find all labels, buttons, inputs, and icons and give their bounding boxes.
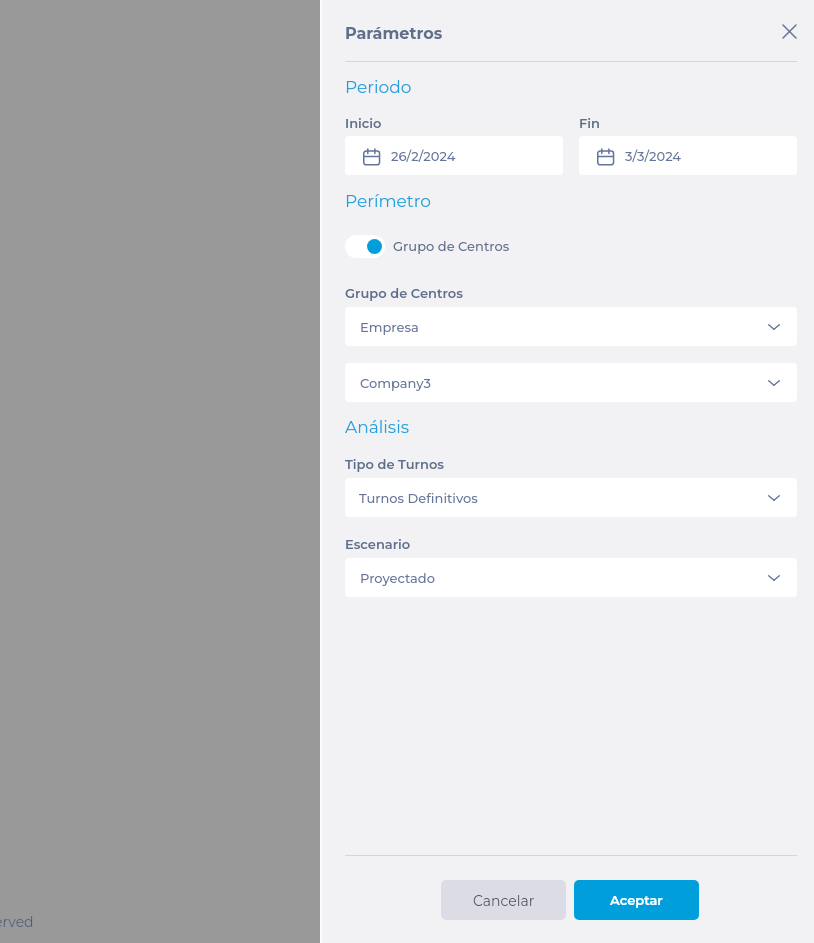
staticText: Aceptar — [610, 892, 663, 908]
staticText: Fin — [579, 115, 600, 131]
staticText: Periodo — [345, 77, 412, 98]
button[interactable]: Cancelar — [441, 880, 566, 920]
staticText: Company3 — [360, 375, 431, 391]
staticText: Proyectado — [360, 570, 435, 586]
staticText: erved — [0, 913, 34, 930]
button[interactable]: Turnos Definitivos — [345, 478, 797, 517]
staticText: Empresa — [360, 319, 419, 335]
button[interactable]: Cerrar — [775, 17, 803, 45]
button[interactable]: Proyectado — [345, 558, 797, 597]
button[interactable]: Aceptar — [574, 880, 699, 920]
button[interactable]: Grupo de Centros — [345, 235, 502, 258]
button[interactable]: Company3 — [345, 363, 797, 402]
staticText: Tipo de Turnos — [345, 456, 444, 472]
button[interactable]: 26/2/2024 — [345, 136, 563, 175]
button[interactable]: Empresa — [345, 307, 797, 346]
staticText: 26/2/2024 — [391, 148, 456, 164]
staticText: Grupo de Centros — [393, 238, 510, 254]
staticText: Análisis — [345, 417, 410, 438]
staticText: Turnos Definitivos — [359, 490, 478, 506]
staticText: Inicio — [345, 115, 382, 131]
staticText: Grupo de Centros — [345, 285, 463, 301]
button[interactable]: 3/3/2024 — [579, 136, 797, 175]
staticText: Perímetro — [345, 191, 431, 212]
staticText: Parámetros — [345, 24, 443, 44]
staticText: Cancelar — [473, 892, 535, 909]
staticText: 3/3/2024 — [625, 148, 682, 164]
staticText: Escenario — [345, 536, 411, 552]
